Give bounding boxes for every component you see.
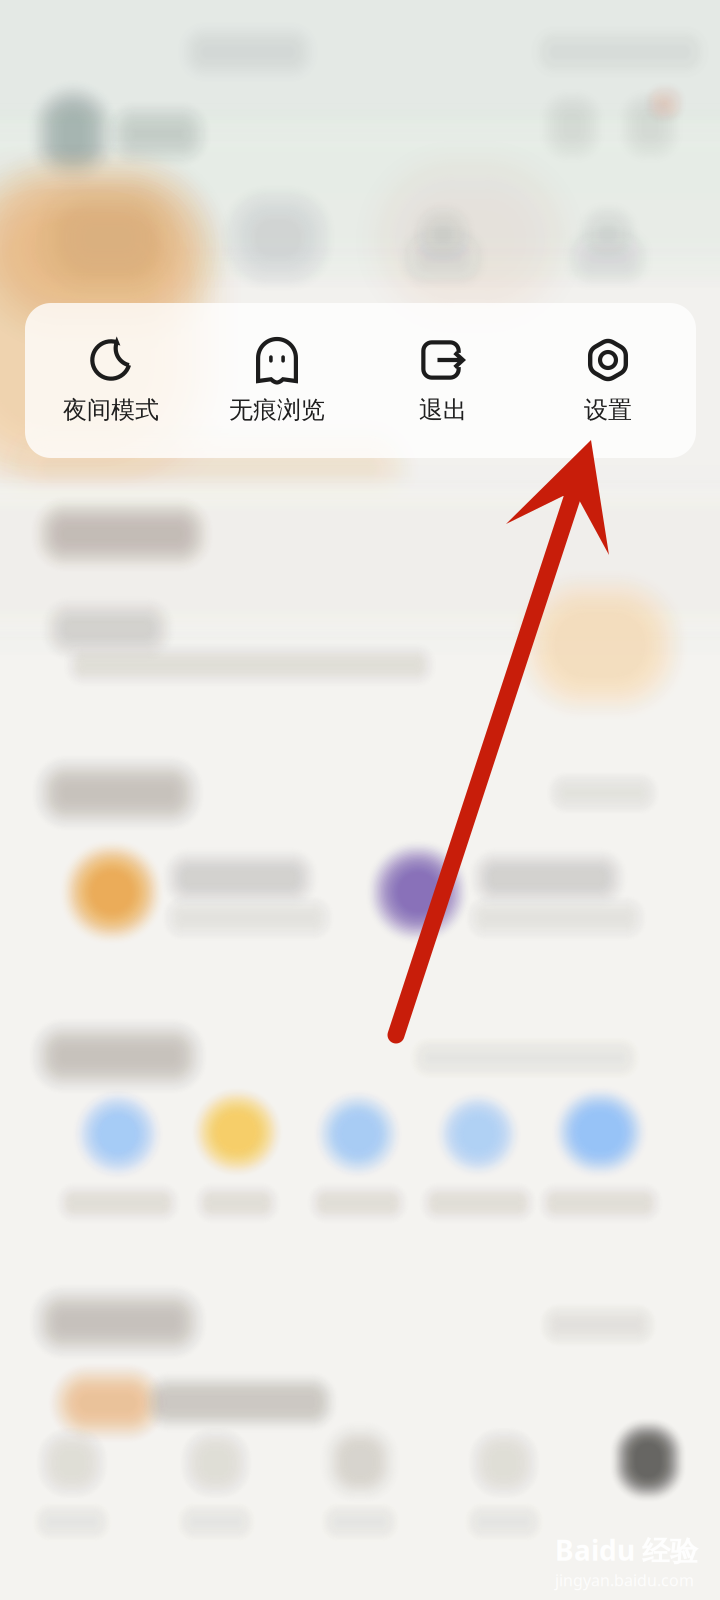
button[interactable]: 夜间模式 xyxy=(25,303,696,458)
staticText: Baidu 经验 xyxy=(555,1531,698,1568)
staticText: jingyan.baidu.com xyxy=(555,1569,694,1591)
staticText: 退出 xyxy=(419,395,467,425)
staticText: 设置 xyxy=(584,395,632,425)
button[interactable]: 退出 xyxy=(25,303,696,458)
staticText: 无痕浏览 xyxy=(229,395,325,425)
button[interactable]: 设置 xyxy=(25,303,696,458)
staticText: 夜间模式 xyxy=(63,395,159,425)
button[interactable]: 无痕浏览 xyxy=(25,303,696,458)
